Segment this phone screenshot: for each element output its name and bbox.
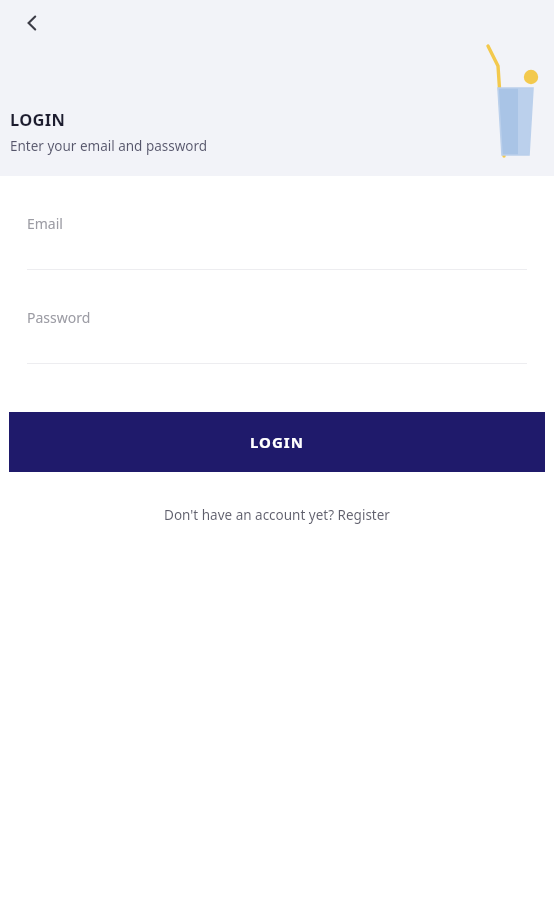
- button[interactable]: Password: [27, 308, 527, 364]
- staticText: LOGIN: [250, 432, 304, 452]
- staticText: LOGIN: [10, 108, 66, 130]
- button[interactable]: LOGIN: [9, 412, 545, 472]
- staticText: Enter your email and password: [10, 137, 208, 155]
- staticText: Don't have an account yet? Register: [164, 506, 390, 524]
- staticText: Email: [27, 214, 63, 233]
- staticText: Password: [27, 308, 91, 327]
- button[interactable]: Back: [12, 3, 52, 43]
- button[interactable]: Email: [27, 214, 527, 270]
- button[interactable]: Don't have an account yet? Register: [0, 498, 554, 532]
